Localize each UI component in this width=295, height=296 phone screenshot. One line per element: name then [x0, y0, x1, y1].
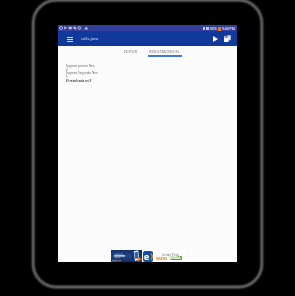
staticText: EDITOR — [124, 49, 137, 54]
button[interactable]: Run — [210, 33, 221, 44]
staticText: e — [144, 251, 150, 262]
staticText: INSTALAR — [169, 256, 182, 260]
staticText: RESULTADOS(6/6) — [149, 49, 179, 54]
staticText: Ingrese Segundo Nro: — [66, 71, 99, 75]
button[interactable]: Menu — [65, 34, 75, 44]
staticText: 9:44 PM — [222, 26, 235, 31]
staticText: Gmail Perú — [162, 252, 180, 256]
button[interactable]: EDITOR — [112, 46, 148, 57]
staticText: GRATIS — [156, 257, 167, 261]
staticText: utils.java — [81, 36, 99, 42]
button[interactable]: RESULTADOS(6/6) — [145, 46, 183, 57]
button[interactable]: Advertisement — [111, 250, 185, 262]
staticText: El resultado es 9 — [66, 79, 92, 83]
staticText: 4 — [66, 68, 68, 72]
staticText: Ingrese primer Nro: — [66, 64, 96, 68]
button[interactable]: Save — [222, 33, 233, 44]
staticText: 5 — [66, 75, 68, 79]
staticText: 80% — [210, 26, 217, 31]
